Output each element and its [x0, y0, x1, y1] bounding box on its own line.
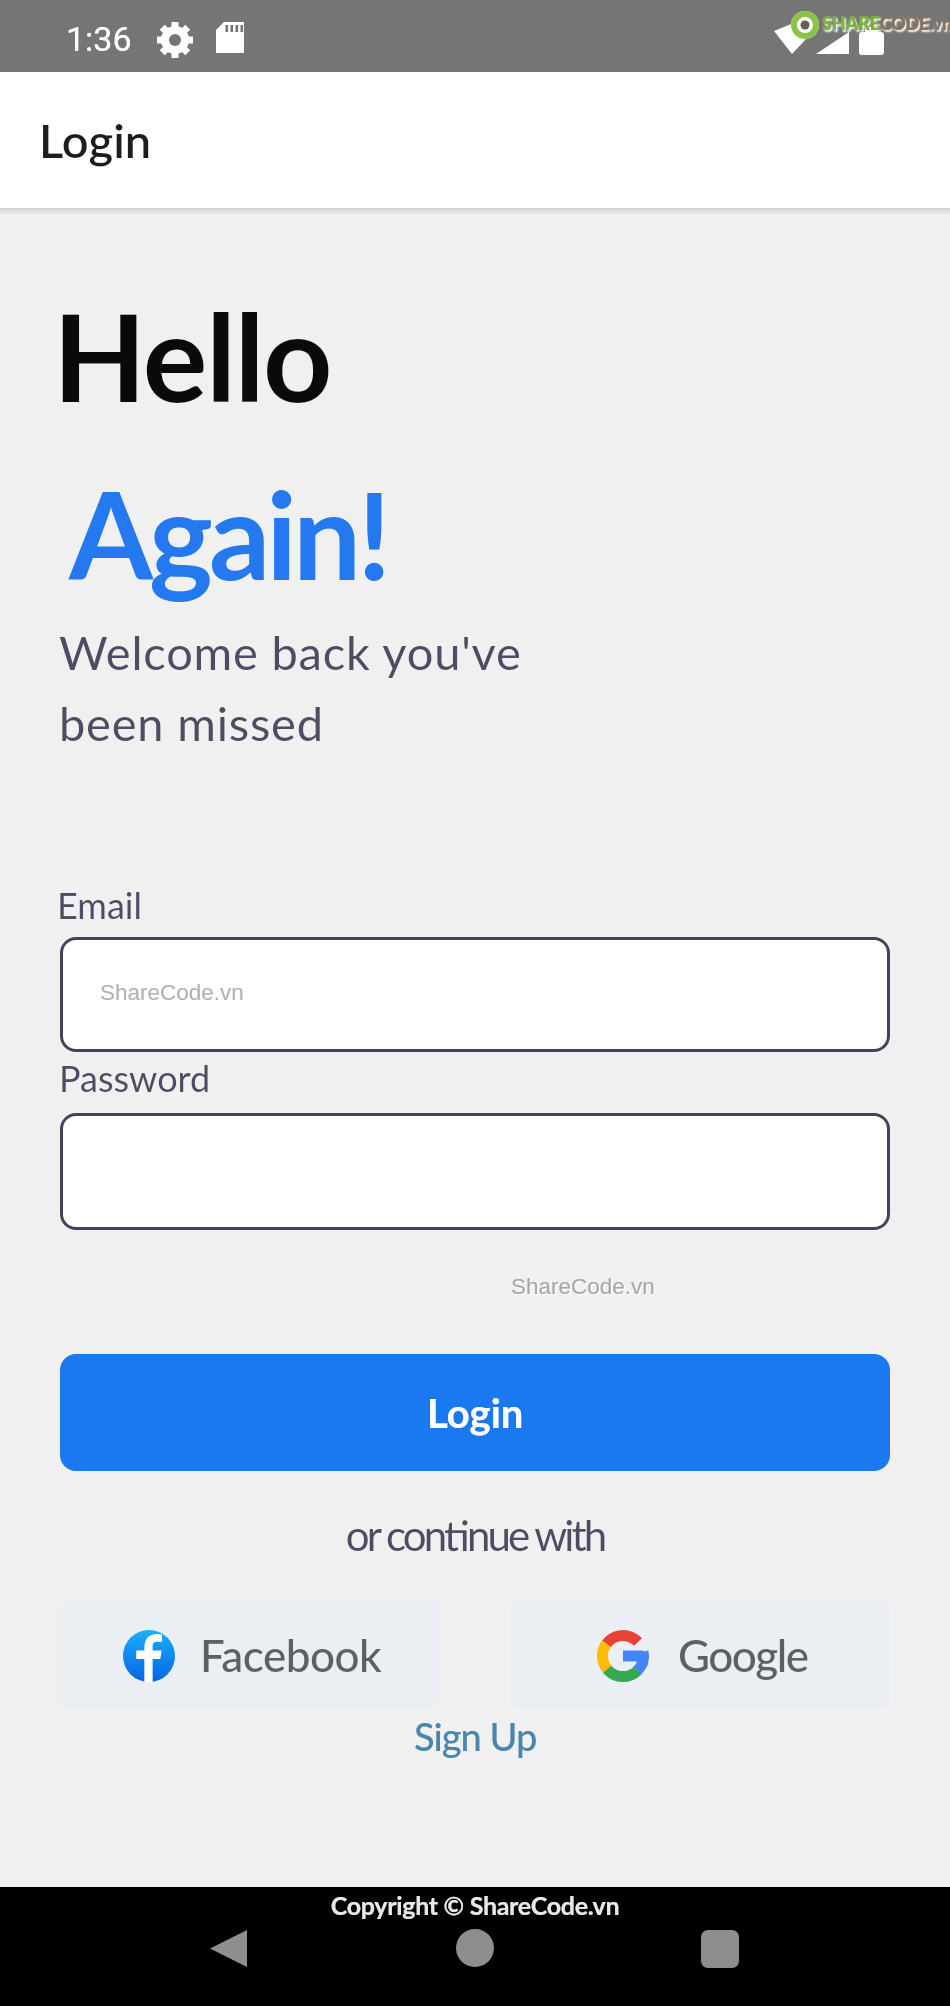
staticText: ShareCode.vn — [512, 1275, 656, 1300]
staticText: Email — [57, 883, 142, 926]
button[interactable] — [456, 1929, 494, 1967]
button[interactable]: Login — [60, 1354, 890, 1471]
staticText: Login — [427, 1389, 524, 1437]
staticText: Copyright © ShareCode.vn — [0, 1890, 950, 1920]
staticText: or continue with — [0, 1510, 950, 1560]
button[interactable] — [60, 937, 890, 1052]
button[interactable]: Google — [510, 1600, 890, 1707]
button[interactable]: Facebook — [60, 1600, 440, 1707]
staticText: Hello — [53, 283, 332, 428]
button[interactable] — [60, 1113, 890, 1230]
staticText: 1:36 — [66, 19, 132, 59]
button[interactable]: Sign Up — [414, 1713, 537, 1759]
staticText: ShareCode.vn — [100, 980, 244, 1005]
button[interactable] — [701, 1930, 739, 1968]
button[interactable] — [210, 1930, 247, 1967]
staticText: Google — [678, 1629, 808, 1682]
staticText: SHARECODE.vn — [822, 12, 950, 34]
staticText: ShareCode.vn — [511, 1274, 655, 1299]
staticText: Again! — [69, 461, 388, 606]
staticText: Password — [59, 1056, 211, 1099]
staticText: Welcome back you've been missed — [59, 624, 522, 751]
staticText: ShareCode.vn — [102, 982, 246, 1007]
staticText: Facebook — [200, 1629, 382, 1682]
staticText: Login — [39, 112, 152, 168]
